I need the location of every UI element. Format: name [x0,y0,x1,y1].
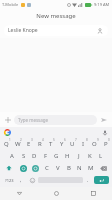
button[interactable]: L [95,150,106,162]
button[interactable]: Back [0,187,38,200]
staticText: T [49,140,53,148]
button[interactable]: K [84,150,95,162]
button[interactable]: Enter [94,176,109,184]
button[interactable]: 1 [1,138,12,150]
staticText: A [10,152,14,160]
staticText: 8 [86,138,88,142]
button[interactable]: Attach [3,115,13,125]
staticText: Z [21,164,25,172]
button[interactable]: 6 [56,138,67,150]
staticText: , [20,177,22,184]
staticText: H [65,152,70,160]
staticText: M [88,164,94,172]
button[interactable]: Type message [14,115,97,125]
button[interactable]: 8 [78,138,89,150]
staticText: S [22,152,26,160]
button[interactable]: . [83,174,93,186]
staticText: 6 [64,138,66,142]
button[interactable]: 0 [100,138,111,150]
button[interactable]: 2 [12,138,23,150]
button[interactable]: F [40,150,51,162]
button[interactable]: D [29,150,40,162]
button[interactable]: Google [3,128,12,137]
staticText: F [44,152,48,160]
button[interactable]: Shift [1,162,17,174]
staticText: N [77,164,82,172]
button[interactable]: Emoji [26,174,38,186]
button[interactable]: ?123 [2,174,16,186]
button[interactable]: Voice input [100,128,109,137]
staticText: 0 [108,138,110,142]
button[interactable]: M [85,162,96,174]
button[interactable]: Leslie Knope [4,25,108,36]
button[interactable]: Home [38,187,75,200]
staticText: I [82,140,85,148]
staticText: 9 [97,138,99,142]
staticText: Type message [18,117,49,123]
button[interactable]: 3 [23,138,34,150]
staticText: D [32,152,37,160]
button[interactable]: Send [99,115,109,125]
button[interactable]: Backspace [96,162,111,174]
staticText: 9:19 AM [94,2,110,7]
staticText: G [54,152,59,160]
button[interactable]: 9 [89,138,100,150]
button[interactable]: 5 [45,138,56,150]
staticText: U [70,140,75,148]
button[interactable]: B [63,162,74,174]
staticText: 7 [75,138,77,142]
button[interactable]: J [73,150,84,162]
staticText: 5 [53,138,55,142]
staticText: ?123 [5,178,14,183]
button[interactable]: 7 [67,138,78,150]
staticText: P [104,140,108,148]
staticText: Leslie Knope [8,27,38,34]
staticText: Q [4,140,9,148]
staticText: C [45,164,49,172]
staticText: 1 [9,138,11,142]
button[interactable]: S [18,150,29,162]
button[interactable]: , [16,174,26,186]
button[interactable]: N [74,162,85,174]
button[interactable]: A [6,150,18,162]
staticText: 2 [20,138,22,142]
button[interactable]: Add contact [96,27,104,35]
staticText: T-Mobile [2,2,19,7]
staticText: Y [60,140,64,148]
staticText: O [92,140,97,148]
button[interactable]: G [51,150,62,162]
staticText: W [15,140,21,148]
button[interactable]: Recents [75,187,112,200]
button[interactable]: X [29,162,41,174]
staticText: L [99,152,103,160]
button[interactable]: V [52,162,63,174]
staticText: V [56,164,60,172]
staticText: R [38,140,42,148]
button[interactable]: H [62,150,73,162]
button[interactable]: Z [17,162,29,174]
staticText: E [27,140,31,148]
staticText: New message [36,12,76,20]
button[interactable]: C [41,162,52,174]
staticText: X [33,164,37,172]
staticText: B [67,164,71,172]
staticText: 4 [42,138,44,142]
staticText: . [87,177,89,184]
button[interactable]: 4 [34,138,45,150]
staticText: K [88,152,92,160]
staticText: 3 [31,138,33,142]
staticText: J [78,152,80,160]
